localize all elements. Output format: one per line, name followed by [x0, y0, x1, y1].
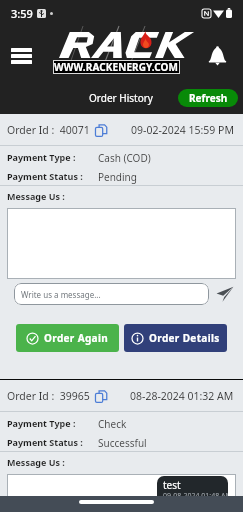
- staticText: Payment Status :: [7, 436, 83, 448]
- staticText: Check: [98, 417, 127, 431]
- staticText: Order Details: [149, 331, 220, 345]
- button[interactable]: Order Details: [124, 324, 227, 352]
- button[interactable]: Notifications: [204, 42, 231, 70]
- staticText: Order Id : 39965: [7, 389, 90, 403]
- staticText: test: [163, 478, 181, 492]
- button[interactable]: test: [157, 476, 228, 502]
- staticText: Cash (COD): [98, 151, 151, 165]
- staticText: 09-08-2024 01:48 AM: [163, 491, 228, 501]
- staticText: Refresh: [189, 91, 228, 105]
- staticText: WWW.RACKENERGY.COM: [54, 60, 179, 74]
- button[interactable]: Copy order id: [7, 123, 107, 137]
- button[interactable]: Refresh: [178, 89, 238, 107]
- staticText: Order Id : 40071: [7, 123, 90, 137]
- staticText: 3:59: [11, 6, 33, 21]
- staticText: Successful: [98, 436, 147, 450]
- staticText: Message Us :: [7, 190, 65, 202]
- button[interactable]: Menu: [6, 43, 37, 69]
- staticText: Pending: [98, 170, 137, 184]
- staticText: Payment Type :: [7, 151, 76, 163]
- button[interactable]: Order Again: [16, 324, 119, 352]
- staticText: Write us a message...: [21, 289, 101, 300]
- staticText: Message Us :: [7, 456, 65, 468]
- staticText: 08-28-2024 01:32 AM: [130, 389, 234, 403]
- staticText: 09-02-2024 15:59 PM: [131, 123, 234, 137]
- staticText: Order Again: [44, 331, 109, 345]
- staticText: Order History: [89, 91, 153, 105]
- button[interactable]: Copy order id: [7, 389, 107, 403]
- staticText: Payment Status :: [7, 170, 83, 182]
- button[interactable]: Write us a message...: [14, 283, 209, 305]
- button[interactable]: Send: [215, 284, 235, 304]
- staticText: Payment Type :: [7, 417, 76, 429]
